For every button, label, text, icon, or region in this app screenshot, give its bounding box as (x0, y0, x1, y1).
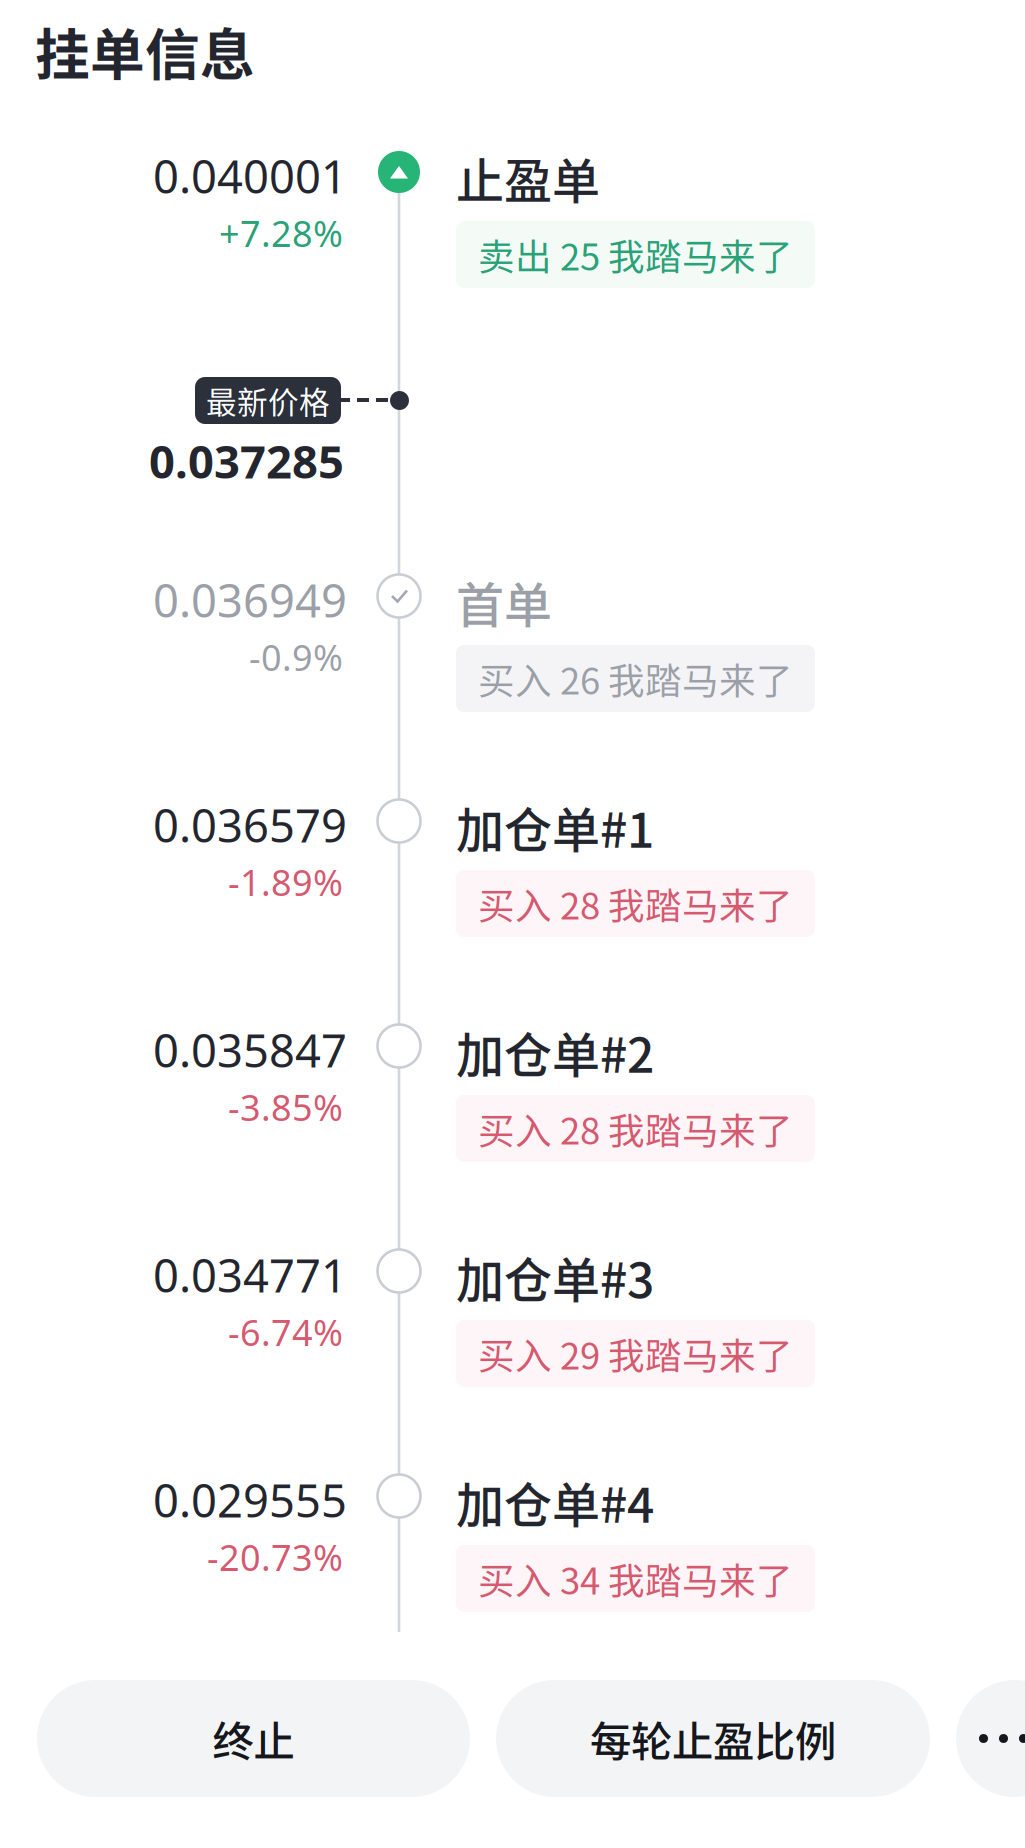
staticText: 终止 (212, 1709, 294, 1768)
staticText: -1.89% (228, 858, 343, 906)
staticText: -0.9% (249, 633, 343, 681)
staticText: 0.040001 (153, 146, 347, 206)
staticText: 加仓单#2 (456, 1017, 654, 1086)
staticText: 买入 28 我踏马来了 (478, 877, 793, 930)
staticText: 0.036579 (153, 795, 347, 855)
staticText: 0.037285 (149, 431, 344, 491)
staticText: 0.034771 (153, 1245, 347, 1305)
staticText: 每轮止盈比例 (590, 1709, 836, 1768)
staticText: -3.85% (228, 1083, 343, 1131)
staticText: -6.74% (228, 1308, 343, 1356)
staticText: 止盈单 (456, 143, 600, 212)
staticText: -20.73% (207, 1533, 343, 1581)
staticText: 加仓单#4 (456, 1467, 654, 1536)
button[interactable]: 终止 (37, 1680, 470, 1797)
staticText: 卖出 25 我踏马来了 (478, 228, 793, 281)
staticText: 0.036949 (153, 570, 347, 630)
staticText: 加仓单#3 (456, 1242, 654, 1311)
staticText: 买入 26 我踏马来了 (478, 652, 793, 705)
staticText: 0.029555 (153, 1470, 347, 1530)
staticText: 加仓单#1 (456, 792, 654, 861)
button[interactable]: 每轮止盈比例 (496, 1680, 930, 1797)
staticText: +7.28% (219, 209, 343, 257)
staticText: 0.035847 (153, 1020, 347, 1080)
staticText: 买入 34 我踏马来了 (478, 1552, 793, 1605)
staticText: 买入 29 我踏马来了 (478, 1327, 793, 1380)
staticText: 买入 28 我踏马来了 (478, 1102, 793, 1155)
staticText: 最新价格 (206, 378, 330, 423)
staticText: 挂单信息 (35, 11, 255, 90)
staticText: 首单 (456, 567, 552, 636)
button[interactable]: More options (956, 1680, 1025, 1797)
